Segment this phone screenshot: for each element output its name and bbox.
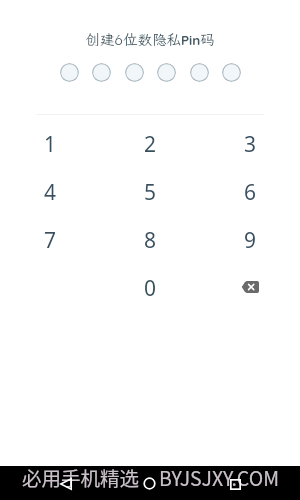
staticText: 5 (144, 178, 157, 207)
button[interactable]: Backspace (200, 264, 300, 312)
staticText: 0 (144, 274, 157, 303)
staticText: 7 (44, 226, 57, 255)
button[interactable]: 1 (0, 120, 100, 168)
button[interactable]: 8 (100, 216, 200, 264)
staticText: 9 (244, 226, 257, 255)
staticText: 6 (244, 178, 257, 207)
button[interactable]: 3 (200, 120, 300, 168)
staticText: 4 (44, 178, 57, 207)
button[interactable]: 7 (0, 216, 100, 264)
button[interactable]: 5 (100, 168, 200, 216)
staticText: 创建6位数隐私Pin码 (85, 30, 215, 48)
button[interactable]: Back (44, 466, 88, 500)
button[interactable]: 6 (200, 168, 300, 216)
button[interactable]: Home (127, 466, 171, 500)
staticText: 2 (144, 130, 157, 159)
staticText: BYJSJXY.COM (159, 463, 279, 491)
staticText: 1 (44, 130, 57, 159)
button[interactable]: 9 (200, 216, 300, 264)
staticText: 必用手机精选 (22, 463, 140, 491)
button[interactable]: 2 (100, 120, 200, 168)
staticText: 8 (144, 226, 157, 255)
button[interactable]: 4 (0, 168, 100, 216)
button[interactable]: 0 (100, 264, 200, 312)
staticText: 3 (244, 130, 257, 159)
button[interactable]: Recents (213, 466, 257, 500)
